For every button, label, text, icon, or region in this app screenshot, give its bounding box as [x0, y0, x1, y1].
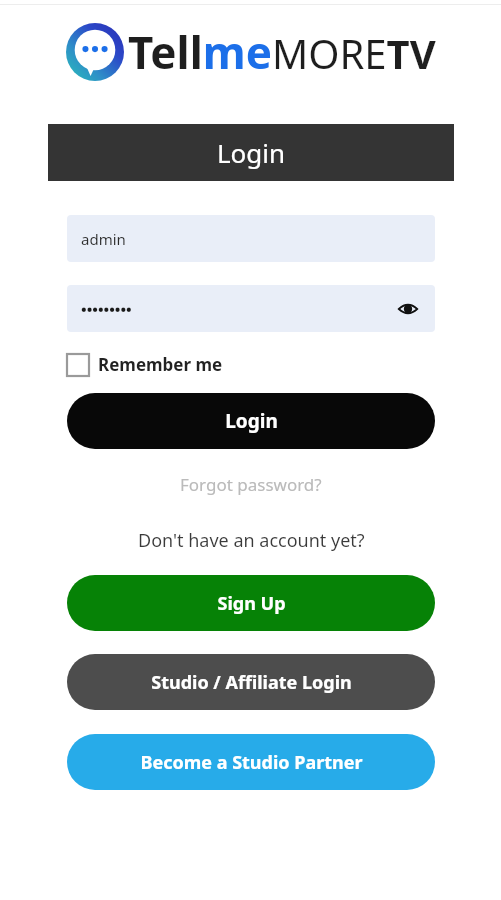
button[interactable]: •••••••••	[67, 285, 435, 332]
staticText: Login	[217, 135, 286, 170]
staticText: •••••••••	[81, 299, 132, 319]
button[interactable]: Show password	[395, 296, 421, 322]
staticText: Sign Up	[217, 591, 286, 616]
button[interactable]: Become a Studio Partner	[67, 734, 435, 790]
staticText: TellmeMORETV	[128, 22, 436, 82]
button[interactable]: Studio / Affiliate Login	[67, 654, 435, 710]
button[interactable]: admin	[67, 215, 435, 262]
staticText: Become a Studio Partner	[140, 750, 363, 775]
button[interactable]: Remember me	[67, 353, 223, 376]
staticText: Remember me	[98, 353, 223, 376]
staticText: Forgot password?	[180, 473, 322, 496]
button[interactable]: Sign Up	[67, 575, 435, 631]
staticText: admin	[81, 229, 126, 249]
button[interactable]: Login	[67, 393, 435, 449]
staticText: Studio / Affiliate Login	[151, 670, 352, 695]
staticText: Don't have an account yet?	[138, 528, 365, 553]
staticText: Login	[225, 408, 278, 434]
button[interactable]: Forgot password?	[67, 469, 435, 500]
